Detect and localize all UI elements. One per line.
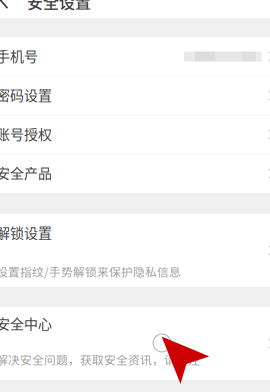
staticText: 手机号 [0, 45, 38, 66]
button[interactable]: 返回 [0, 0, 9, 9]
button[interactable]: 解锁设置 [0, 214, 270, 287]
button[interactable]: 手机号 [0, 37, 270, 75]
button[interactable]: 安全产品 [0, 154, 270, 192]
staticText: 账号授权 [0, 123, 52, 144]
staticText: 安全设置 [27, 0, 91, 13]
staticText: 安全产品 [0, 162, 52, 183]
staticText: 解锁设置 [0, 222, 52, 242]
staticText: 密码设置 [0, 84, 52, 105]
button[interactable]: 账号授权 [0, 115, 270, 153]
button[interactable]: 密码设置 [0, 76, 270, 114]
staticText: 设置指纹/手势解锁来保护隐私信息 [0, 263, 181, 280]
staticText: 安全中心 [0, 313, 52, 333]
staticText: 解决安全问题，获取安全资讯，请关注 [0, 351, 200, 368]
button[interactable]: 安全中心 [0, 307, 270, 380]
